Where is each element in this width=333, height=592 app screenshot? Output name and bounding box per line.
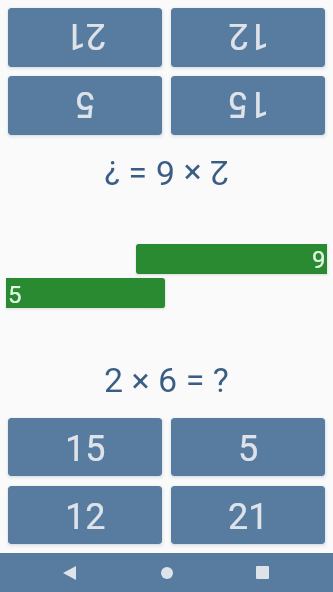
button[interactable]: 15 — [8, 418, 162, 476]
button[interactable]: 5 — [171, 418, 325, 476]
button[interactable]: 21 — [171, 486, 325, 544]
button[interactable]: 12 — [8, 486, 162, 544]
button[interactable]: 21 — [8, 8, 162, 67]
button[interactable]: Home — [144, 553, 189, 592]
staticText: 5 — [238, 428, 259, 470]
staticText: 21 — [228, 496, 269, 538]
staticText: 21 — [65, 15, 106, 57]
button[interactable]: Recent apps — [240, 553, 285, 592]
staticText: 15 — [65, 428, 106, 470]
button[interactable]: 15 — [171, 76, 325, 135]
staticText: 12 — [65, 496, 106, 538]
staticText: 12 — [228, 15, 269, 57]
staticText: 5 — [8, 281, 22, 308]
staticText: 15 — [228, 83, 269, 125]
staticText: 5 — [75, 83, 96, 125]
button[interactable]: 12 — [171, 8, 325, 67]
staticText: 9 — [312, 246, 326, 274]
button[interactable]: Back — [47, 553, 92, 592]
staticText: 2 × 6 = ? — [104, 360, 229, 400]
button[interactable]: 5 — [8, 76, 162, 135]
staticText: 2 × 6 = ? — [104, 153, 229, 193]
